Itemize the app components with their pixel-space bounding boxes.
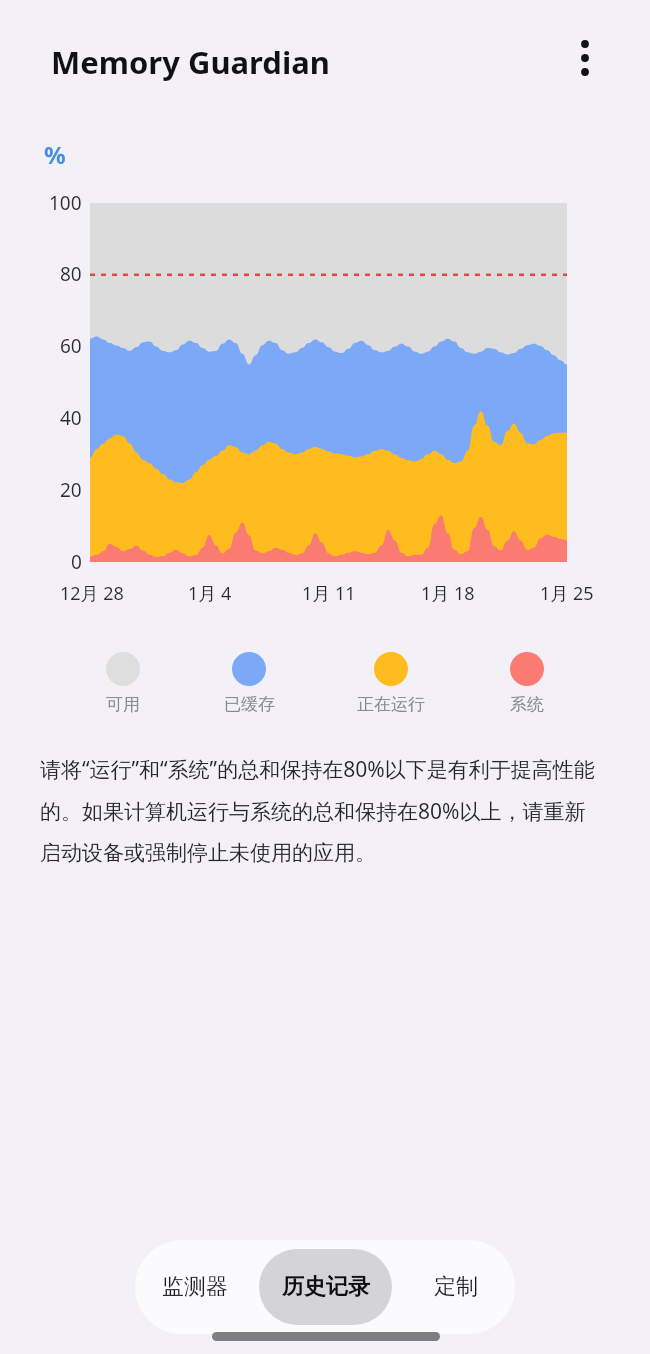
staticText: 60 bbox=[60, 333, 82, 359]
button[interactable]: 系统 bbox=[467, 652, 587, 715]
button[interactable]: 可用 bbox=[63, 652, 183, 715]
staticText: 可用 bbox=[106, 694, 140, 715]
staticText: 已缓存 bbox=[224, 694, 275, 715]
staticText: 40 bbox=[60, 405, 82, 431]
staticText: 正在运行 bbox=[357, 694, 425, 715]
button[interactable]: 历史记录 bbox=[259, 1249, 392, 1325]
staticText: 1月 11 bbox=[302, 581, 356, 606]
staticText: 100 bbox=[49, 190, 82, 216]
staticText: Memory Guardian bbox=[51, 41, 330, 83]
staticText: 20 bbox=[60, 477, 82, 503]
staticText: 1月 4 bbox=[188, 581, 232, 606]
staticText: 1月 18 bbox=[421, 581, 475, 606]
staticText: % bbox=[44, 138, 66, 171]
button[interactable]: 已缓存 bbox=[189, 652, 309, 715]
staticText: 80 bbox=[60, 261, 82, 287]
button[interactable]: 定制 bbox=[400, 1249, 511, 1325]
button[interactable]: More options bbox=[566, 39, 604, 77]
staticText: 12月 28 bbox=[60, 581, 124, 606]
staticText: 监测器 bbox=[162, 1273, 228, 1301]
staticText: 历史记录 bbox=[282, 1273, 370, 1301]
button[interactable]: 正在运行 bbox=[331, 652, 451, 715]
staticText: 1月 25 bbox=[540, 581, 594, 606]
button[interactable]: 监测器 bbox=[139, 1249, 251, 1325]
staticText: 请将“运行”和“系统”的总和保持在80%以下是有利于提高性能的。如果计算机运行与… bbox=[40, 755, 596, 866]
staticText: 系统 bbox=[510, 694, 544, 715]
staticText: 0 bbox=[71, 549, 82, 575]
staticText: 定制 bbox=[434, 1273, 478, 1301]
